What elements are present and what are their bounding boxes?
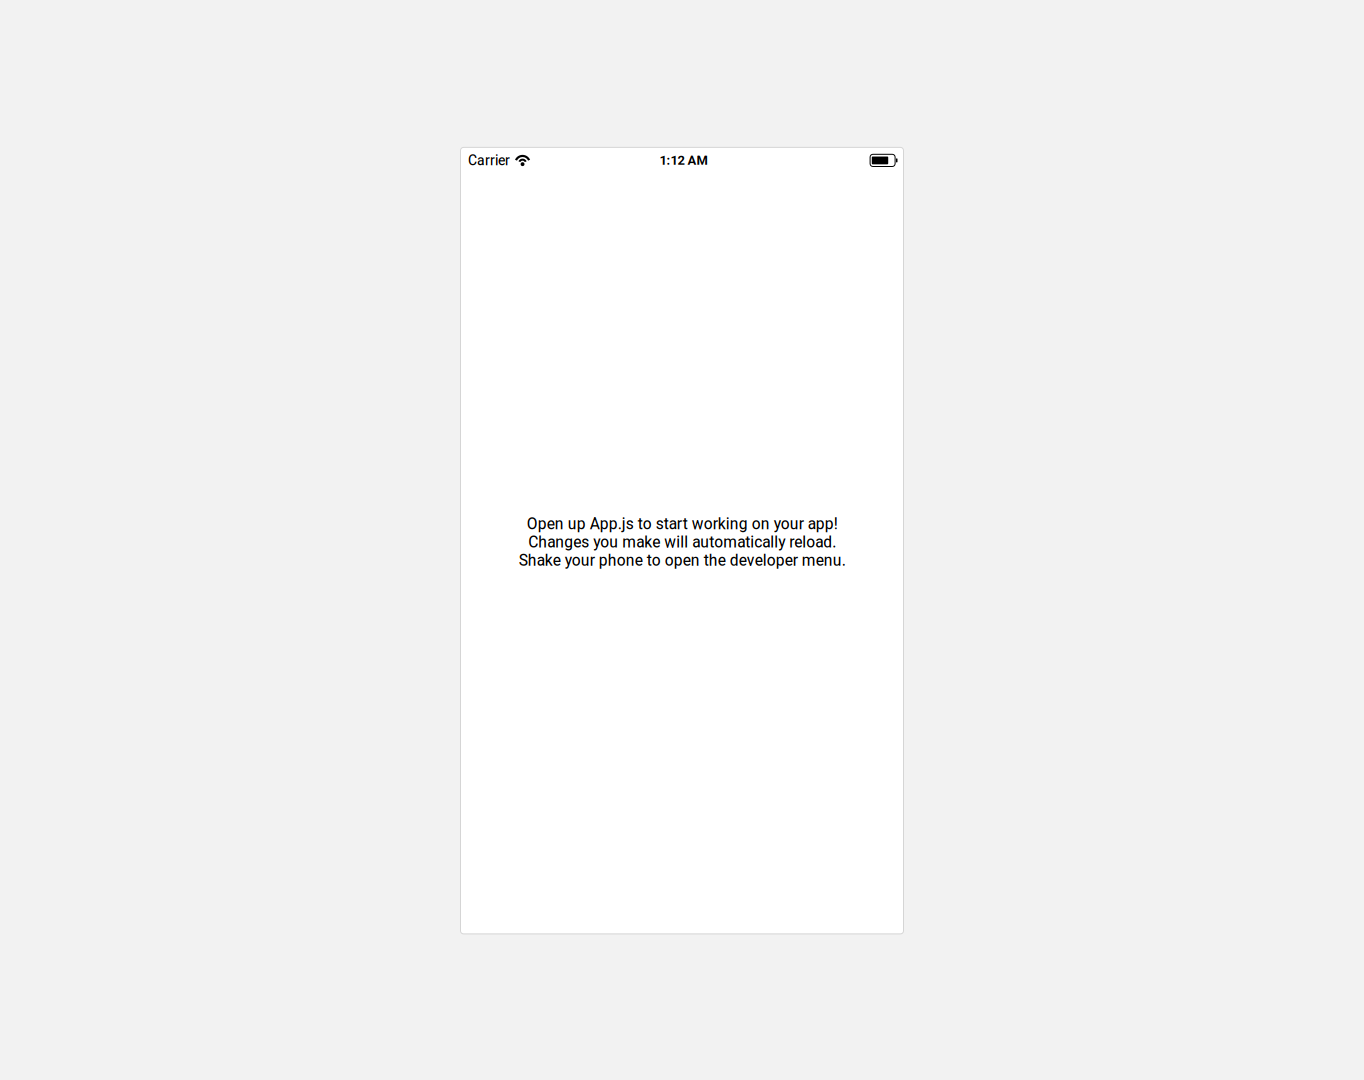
staticText: Changes you make will automatically relo… bbox=[528, 533, 836, 551]
staticText: Open up App.js to start working on your … bbox=[526, 515, 837, 533]
staticText: Shake your phone to open the developer m… bbox=[518, 551, 845, 570]
staticText: Carrier bbox=[468, 152, 510, 168]
staticText: 1:12 AM bbox=[659, 153, 707, 168]
